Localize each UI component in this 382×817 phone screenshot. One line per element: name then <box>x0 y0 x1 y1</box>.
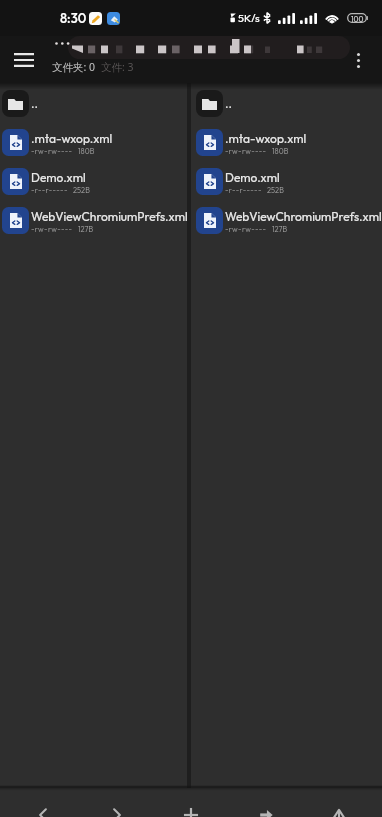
staticText: 100 <box>351 14 364 23</box>
staticText: .mta-wxop.xml <box>225 131 307 146</box>
staticText: 文件夹: 0 <box>52 60 98 74</box>
staticText: -r--r----- <box>31 185 68 194</box>
staticText: 127B <box>272 224 288 233</box>
staticText: -rw-rw---- <box>31 146 73 155</box>
button[interactable]: Demo.xml <box>0 162 187 201</box>
staticText: 127B <box>78 224 94 233</box>
button[interactable]: .. <box>191 84 382 123</box>
staticText: 252B <box>73 185 90 194</box>
staticText: .mta-wxop.xml <box>31 131 113 146</box>
staticText: .. <box>225 96 232 111</box>
button[interactable]: WebViewChromiumPrefs.xml <box>0 201 187 240</box>
staticText: -r--r----- <box>225 185 262 194</box>
button[interactable]: Forward <box>86 788 148 817</box>
staticText: 文件: 3 <box>101 60 134 74</box>
button[interactable]: .mta-wxop.xml <box>0 123 187 162</box>
button[interactable]: WebViewChromiumPrefs.xml <box>191 201 382 240</box>
staticText: 8:30 <box>60 10 87 26</box>
staticText: 5K/s <box>238 11 260 25</box>
staticText: Demo.xml <box>225 170 280 185</box>
staticText: 252B <box>267 185 284 194</box>
staticText: -rw-rw---- <box>225 146 267 155</box>
staticText: 180B <box>78 146 95 155</box>
staticText: .. <box>31 96 38 111</box>
button[interactable]: Back <box>12 788 74 817</box>
staticText: -rw-rw---- <box>31 224 73 233</box>
button[interactable]: .. <box>0 84 187 123</box>
staticText: Demo.xml <box>31 170 86 185</box>
staticText: WebViewChromiumPrefs.xml <box>31 209 187 224</box>
button[interactable]: More options <box>340 42 376 78</box>
staticText: -rw-rw---- <box>225 224 267 233</box>
button[interactable]: Demo.xml <box>191 162 382 201</box>
button[interactable]: New <box>160 788 222 817</box>
button[interactable]: Move <box>234 788 296 817</box>
button[interactable]: Menu <box>6 42 42 78</box>
button[interactable]: Up <box>308 788 370 817</box>
staticText: WebViewChromiumPrefs.xml <box>225 209 382 224</box>
button[interactable]: .mta-wxop.xml <box>191 123 382 162</box>
staticText: 180B <box>272 146 289 155</box>
